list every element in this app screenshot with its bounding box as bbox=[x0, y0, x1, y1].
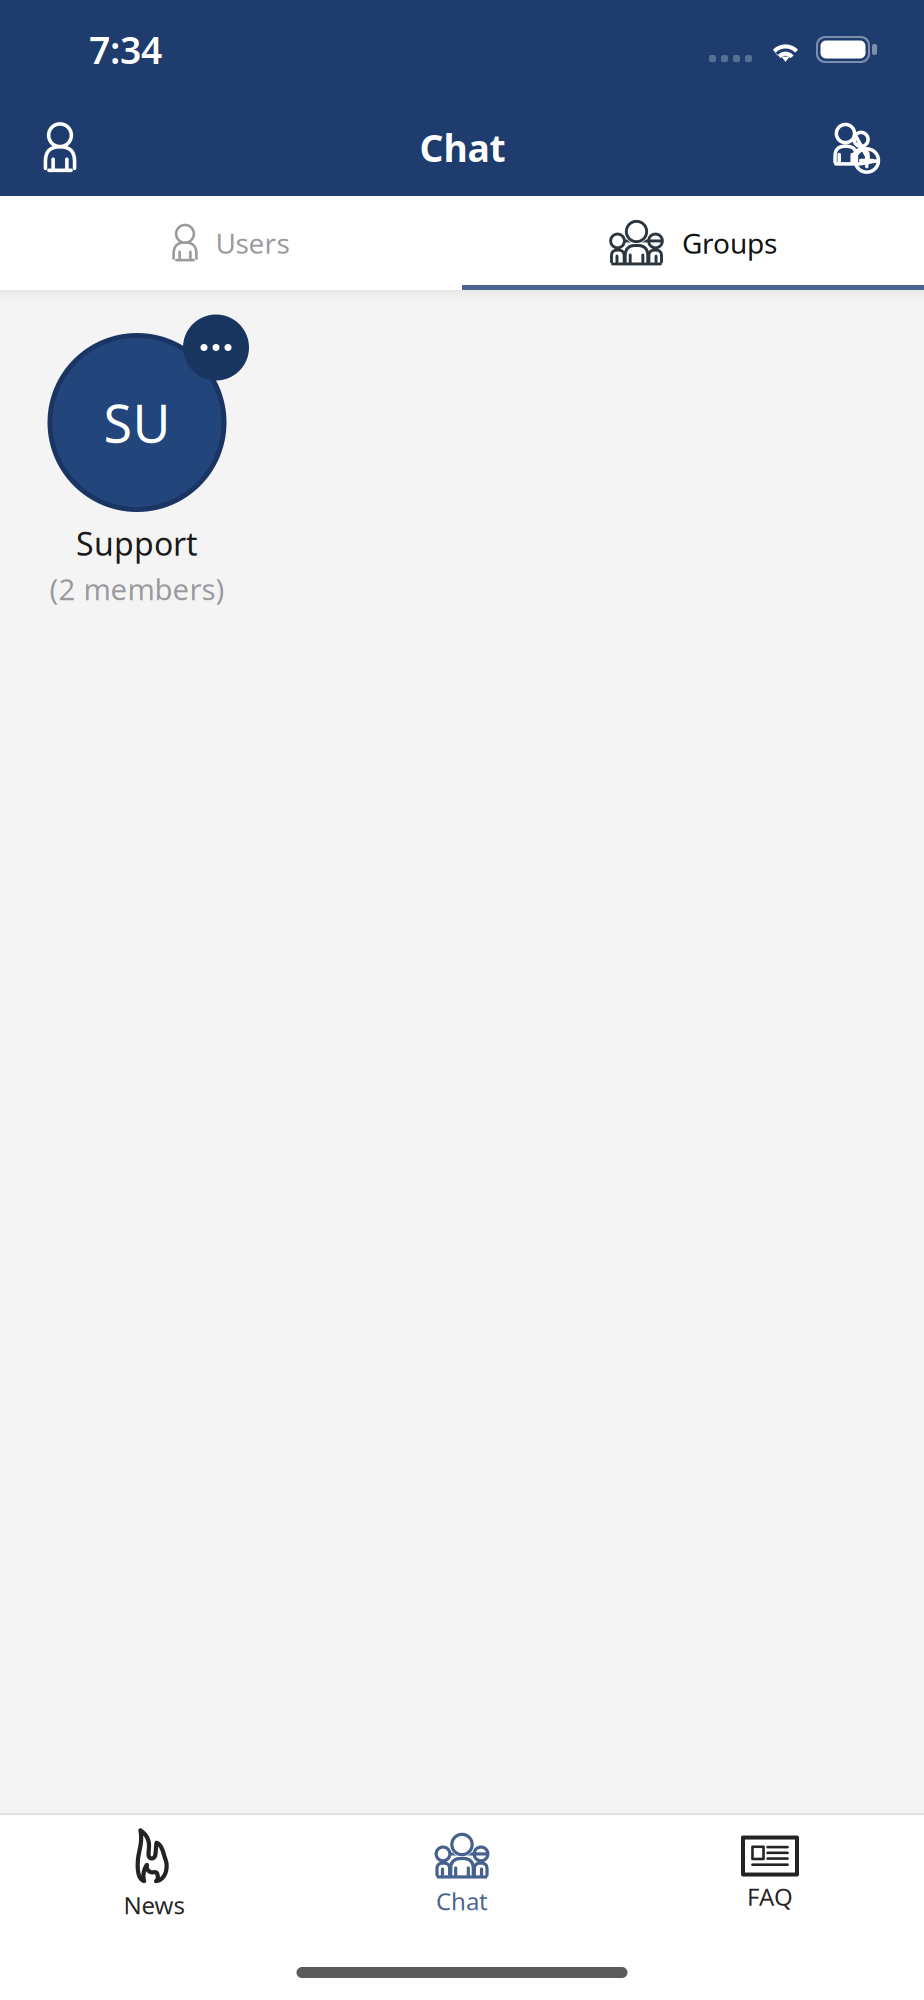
staticText: Users bbox=[215, 224, 289, 262]
staticText: SU bbox=[103, 388, 170, 457]
staticText: (2 members) bbox=[49, 569, 224, 608]
staticText: 7:34 bbox=[89, 25, 162, 74]
button[interactable]: Support group bbox=[23, 312, 250, 512]
button[interactable]: Users bbox=[0, 196, 462, 290]
button[interactable]: FAQ bbox=[616, 1823, 924, 1924]
button[interactable]: Chat bbox=[308, 1819, 616, 1929]
staticText: Chat bbox=[436, 1885, 488, 1917]
button[interactable]: Groups bbox=[462, 196, 924, 290]
staticText: Chat bbox=[419, 123, 505, 172]
button[interactable]: Profile bbox=[0, 104, 100, 190]
button[interactable]: News bbox=[0, 1815, 308, 1933]
staticText: FAQ bbox=[747, 1880, 793, 1912]
button[interactable]: Add group bbox=[803, 105, 924, 190]
staticText: Support bbox=[76, 522, 198, 564]
staticText: Groups bbox=[682, 224, 777, 262]
staticText: News bbox=[123, 1889, 184, 1921]
